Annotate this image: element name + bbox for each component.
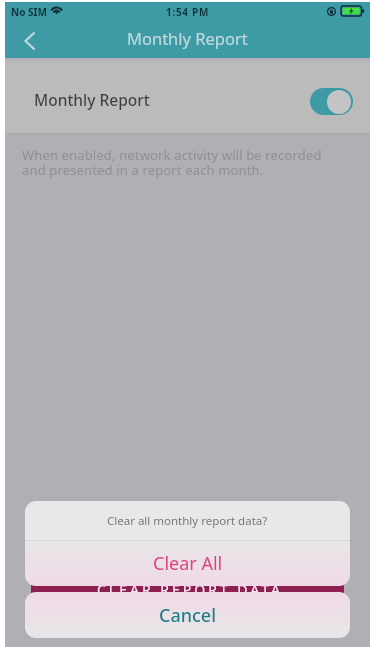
staticText: Monthly Report xyxy=(127,27,248,49)
button[interactable]: Back xyxy=(8,23,50,59)
button[interactable]: Monthly Report switch, on xyxy=(310,88,353,115)
button[interactable]: Monthly Report xyxy=(5,63,370,133)
staticText: No SIM xyxy=(11,5,47,19)
staticText: Monthly Report xyxy=(34,89,150,110)
button[interactable]: Cancel xyxy=(25,592,350,638)
staticText: 1:54 PM xyxy=(166,5,210,19)
staticText: CLEAR REPORT DATA xyxy=(97,580,283,599)
staticText: Clear all monthly report data? xyxy=(107,513,268,529)
button[interactable]: Clear All xyxy=(25,541,350,586)
staticText: When enabled, network activity will be r… xyxy=(22,146,322,179)
button[interactable]: CLEAR REPORT DATA xyxy=(31,572,344,608)
staticText: Cancel xyxy=(159,603,217,628)
staticText: Clear All xyxy=(153,551,223,576)
